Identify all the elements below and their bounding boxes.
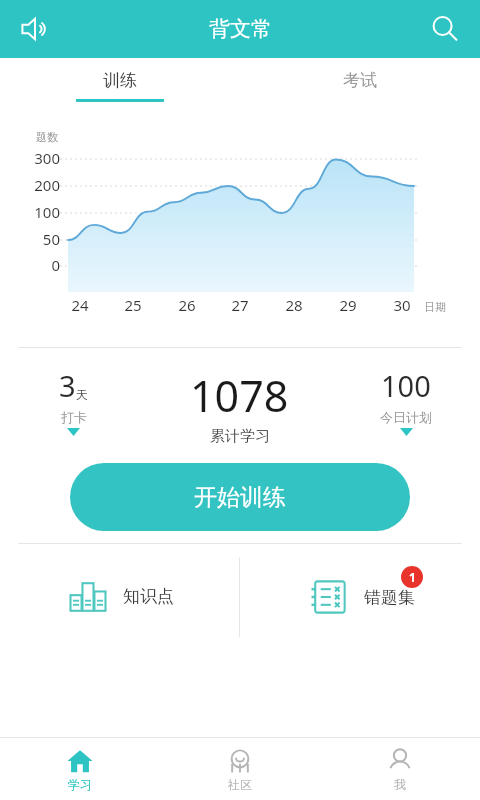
staticText: 3 [59, 366, 76, 405]
staticText: 24 [60, 295, 100, 315]
staticText: 知识点 [123, 586, 174, 607]
button[interactable]: 错题集 [240, 544, 480, 649]
staticText: 训练 [103, 70, 137, 91]
staticText: 100 [0, 202, 60, 222]
button[interactable]: 我 [320, 738, 480, 800]
staticText: 1 [409, 569, 416, 585]
button[interactable]: Search [422, 6, 468, 52]
staticText: 27 [220, 295, 260, 315]
staticText: 30 [382, 295, 422, 315]
staticText: 社区 [228, 777, 252, 792]
staticText: 开始训练 [194, 483, 286, 512]
staticText: 26 [167, 295, 207, 315]
button[interactable]: 3 [0, 366, 147, 436]
staticText: 我 [394, 777, 406, 792]
staticText: 200 [0, 175, 60, 195]
staticText: 300 [0, 148, 60, 168]
button[interactable]: Sound [12, 6, 58, 52]
staticText: 100 [381, 366, 431, 405]
staticText: 日期 [424, 300, 446, 314]
staticText: 25 [113, 295, 153, 315]
staticText: 错题集 [364, 587, 415, 608]
staticText: 50 [0, 229, 60, 249]
staticText: 0 [0, 255, 60, 275]
button[interactable]: 社区 [160, 738, 320, 800]
button[interactable]: 100 [332, 366, 480, 436]
staticText: 29 [328, 295, 368, 315]
staticText: 累计学习 [210, 427, 270, 446]
staticText: 28 [274, 295, 314, 315]
staticText: 学习 [68, 777, 92, 792]
button[interactable]: 开始训练 [70, 463, 410, 531]
staticText: 1078 [190, 366, 289, 425]
staticText: 题数 [36, 130, 58, 144]
button[interactable]: 训练 [0, 58, 240, 106]
staticText: 背文常 [209, 16, 272, 42]
button[interactable]: 考试 [240, 58, 480, 106]
button[interactable]: 学习 [0, 738, 160, 800]
staticText: 今日计划 [380, 409, 432, 425]
button[interactable]: 知识点 [0, 544, 239, 649]
staticText: 考试 [343, 70, 377, 91]
staticText: 天 [76, 387, 88, 402]
staticText: 打卡 [61, 409, 87, 425]
